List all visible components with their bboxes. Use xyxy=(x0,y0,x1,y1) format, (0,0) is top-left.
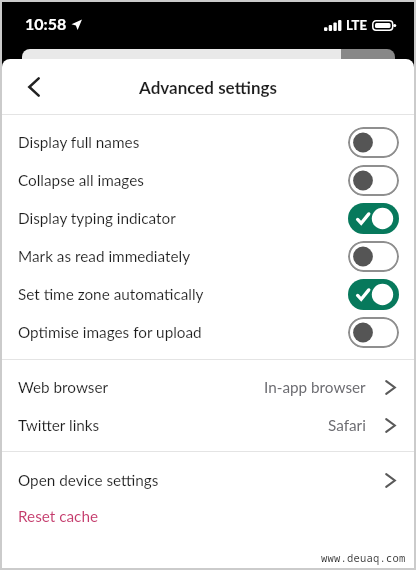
staticText: Web browser xyxy=(18,378,109,396)
staticText: Safari xyxy=(328,416,366,434)
button[interactable]: Set time zone automatically xyxy=(2,275,414,313)
button[interactable]: Web browser xyxy=(2,368,414,406)
staticText: Display full names xyxy=(18,133,140,151)
button[interactable]: Collapse all images xyxy=(2,161,414,199)
button[interactable]: Display typing indicator xyxy=(2,199,414,237)
staticText: LTE xyxy=(346,17,367,33)
staticText: Set time zone automatically xyxy=(18,285,204,303)
staticText: Optimise images for upload xyxy=(18,323,202,341)
staticText: In-app browser xyxy=(264,378,366,396)
button[interactable]: Display full names xyxy=(2,123,414,161)
button[interactable]: Reset cache xyxy=(2,497,414,535)
button[interactable]: Twitter links xyxy=(2,406,414,444)
button[interactable]: Back xyxy=(14,67,54,107)
staticText: www.deuaq.com xyxy=(321,551,406,565)
button[interactable]: Open device settings xyxy=(2,461,414,499)
staticText: Collapse all images xyxy=(18,171,144,189)
staticText: Display typing indicator xyxy=(18,209,176,227)
staticText: Twitter links xyxy=(18,416,100,434)
staticText: Reset cache xyxy=(18,507,99,525)
staticText: Mark as read immediately xyxy=(18,247,191,265)
button[interactable]: Mark as read immediately xyxy=(2,237,414,275)
button[interactable]: Optimise images for upload xyxy=(2,313,414,351)
staticText: Open device settings xyxy=(18,471,159,489)
staticText: Advanced settings xyxy=(139,77,278,97)
staticText: 10:58 xyxy=(25,14,67,33)
